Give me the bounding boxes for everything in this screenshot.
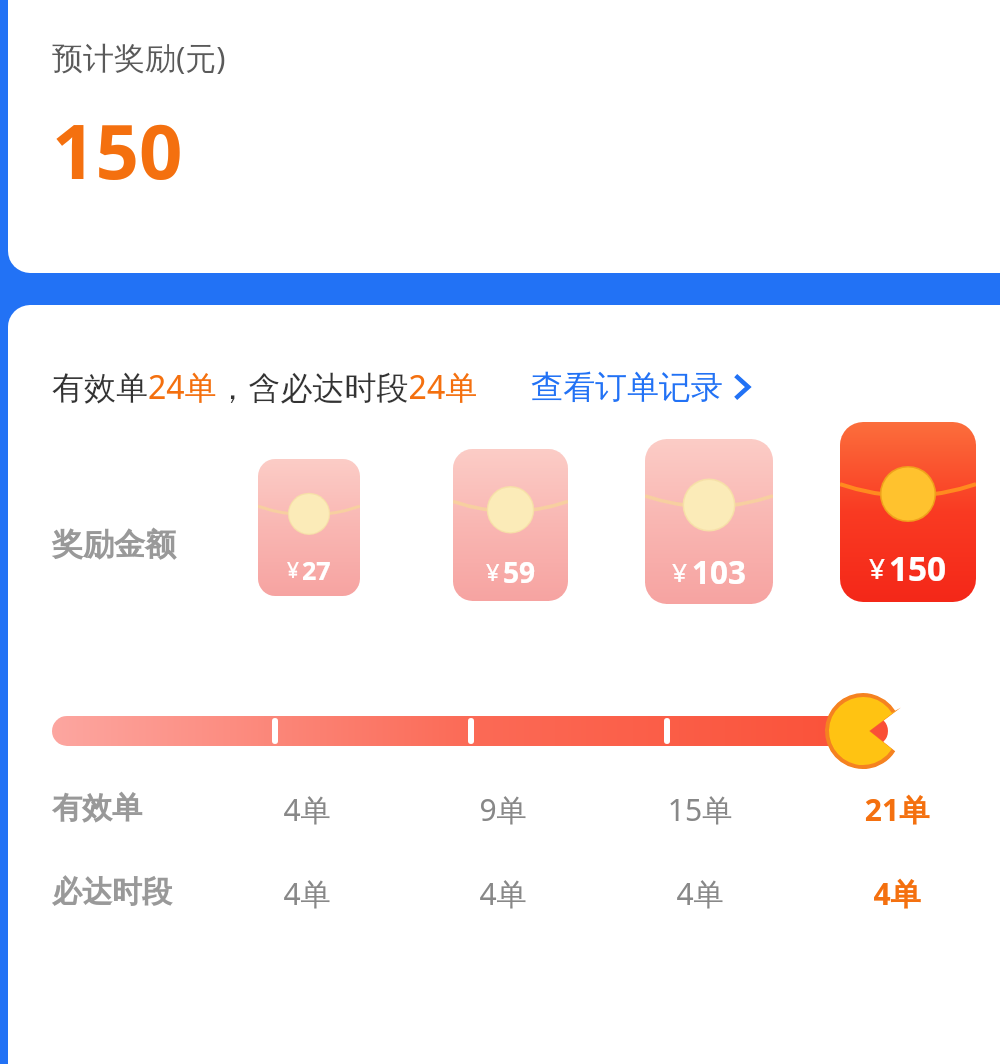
button[interactable]: 奖励 59 元 [453, 449, 568, 601]
button[interactable]: 查看订单记录 [479, 361, 759, 413]
staticText: ¥ [486, 556, 500, 588]
button[interactable]: 奖励 150 元 [840, 422, 976, 602]
button[interactable]: 奖励 103 元 [645, 439, 773, 604]
staticText: 4单 [252, 873, 362, 914]
staticText: 15单 [645, 789, 755, 830]
staticText: 27 [302, 553, 331, 587]
staticText: 21单 [842, 789, 952, 830]
staticText: 4单 [645, 873, 755, 914]
staticText: 4单 [448, 873, 558, 914]
staticText: 103 [692, 550, 746, 593]
staticText: 奖励金额 [52, 525, 176, 564]
staticText: ¥ [672, 554, 688, 590]
staticText: 59 [503, 553, 536, 591]
staticText: 150 [889, 545, 947, 590]
staticText: 查看订单记录 [531, 367, 723, 407]
staticText: ¥ [869, 549, 885, 587]
staticText: 预计奖励(元) [52, 36, 226, 78]
button[interactable]: 奖励 27 元 [258, 459, 360, 596]
staticText: ¥ [287, 556, 299, 584]
staticText: 有效单24单，含必达时段24单 [52, 365, 478, 409]
staticText: 4单 [252, 789, 362, 830]
staticText: 必达时段 [52, 873, 172, 911]
staticText: 9单 [448, 789, 558, 830]
staticText: 有效单 [52, 789, 142, 827]
staticText: 4单 [842, 873, 952, 914]
staticText: 150 [52, 98, 183, 202]
